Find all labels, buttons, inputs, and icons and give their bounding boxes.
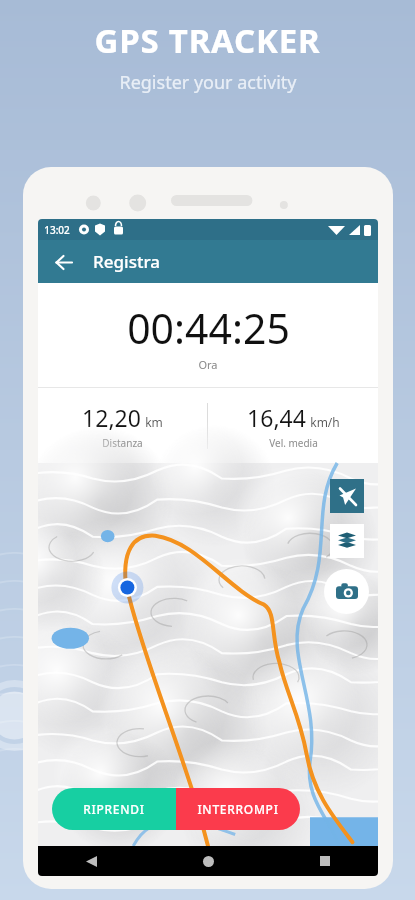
button[interactable]: Map layers [330,524,364,558]
button[interactable]: RIPRENDI [52,788,176,830]
staticText: 16,44 [247,402,306,433]
button[interactable]: Take photo [324,569,369,614]
staticText: km/h [310,414,340,430]
staticText: Vel. media [269,436,318,450]
button[interactable]: 12,20 [38,388,207,463]
button[interactable]: Back [78,848,104,874]
button[interactable]: Recent apps [312,848,338,874]
button[interactable]: Home [195,848,221,874]
staticText: Registra [93,250,160,273]
staticText: 13:02 [44,223,70,237]
staticText: Ora [198,357,218,372]
staticText: 12,20 [82,402,141,433]
staticText: Distanza [102,436,143,450]
button[interactable]: INTERROMPI [176,788,300,830]
button[interactable]: Mute navigation voice [330,479,364,513]
button[interactable]: Back [45,244,81,280]
staticText: GPS TRACKER [94,18,321,63]
button[interactable]: 16,44 [208,388,378,463]
staticText: 00:44:25 [127,300,290,356]
staticText: INTERROMPI [197,801,279,817]
staticText: km [145,414,163,430]
staticText: RIPRENDI [83,801,145,817]
staticText: Register your activity [119,70,297,95]
